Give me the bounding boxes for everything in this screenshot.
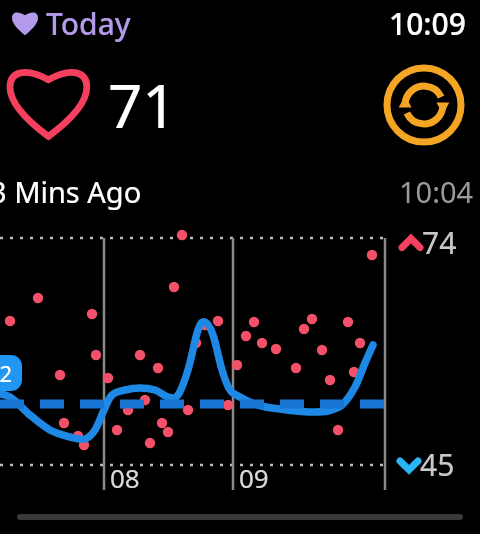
staticText: 74 (422, 222, 457, 263)
button[interactable]: Sync (382, 63, 466, 147)
staticText: 10:04 (399, 172, 474, 211)
staticText: 52 (0, 358, 13, 388)
staticText: 3 Mins Ago (0, 172, 142, 211)
staticText: 08 (110, 460, 140, 495)
button[interactable] (0, 225, 480, 500)
button[interactable]: Today (12, 0, 466, 46)
staticText: 71 (108, 64, 177, 146)
staticText: Today (46, 3, 131, 44)
staticText: 10:09 (389, 3, 466, 44)
staticText: 45 (420, 444, 455, 485)
staticText: 09 (239, 460, 269, 495)
